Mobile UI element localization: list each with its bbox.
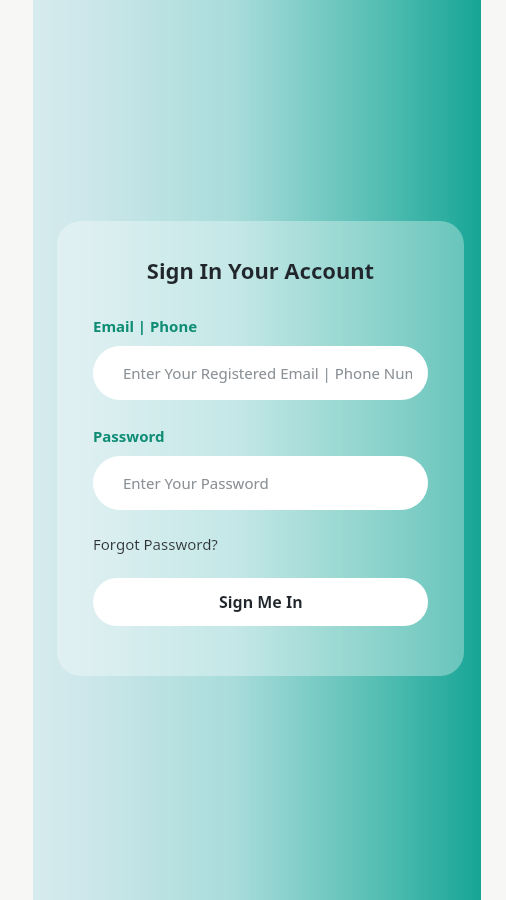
staticText: Sign Me In — [219, 591, 303, 613]
staticText: Enter Your Password — [123, 473, 269, 493]
button[interactable]: Enter Your Registered Email | Phone Numb… — [93, 346, 428, 400]
button[interactable]: Forgot Password? — [93, 534, 218, 554]
staticText: Email | Phone — [93, 316, 198, 336]
staticText: Enter Your Registered Email | Phone Numb… — [123, 363, 412, 383]
button[interactable]: Enter Your Password — [93, 456, 428, 510]
staticText: Password — [93, 426, 165, 446]
staticText: Forgot Password? — [93, 534, 218, 554]
button[interactable]: Sign Me In — [93, 578, 428, 626]
staticText: Sign In Your Account — [93, 255, 428, 285]
